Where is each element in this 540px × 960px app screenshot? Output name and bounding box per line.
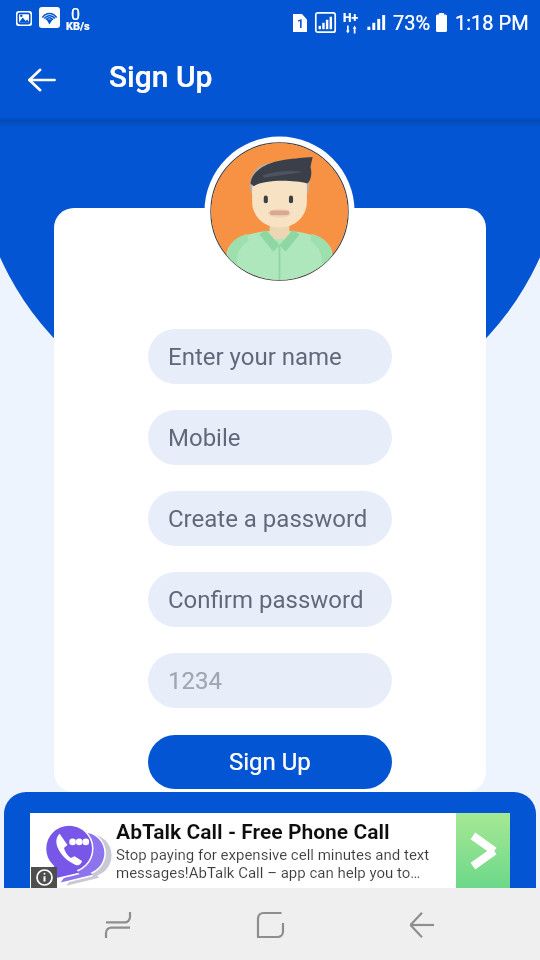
button[interactable]: Open ad (456, 813, 510, 888)
staticText: Confirm password (168, 586, 364, 614)
button[interactable]: Confirm password (148, 572, 392, 627)
staticText: Sign Up (229, 748, 311, 776)
button[interactable]: Home (240, 895, 300, 955)
staticText: 1234 (168, 667, 222, 695)
button[interactable]: Mobile (148, 410, 392, 465)
staticText: Enter your name (168, 343, 342, 371)
staticText: Create a password (168, 505, 368, 533)
staticText: Mobile (168, 424, 241, 452)
button[interactable]: 1234 (148, 653, 392, 708)
button[interactable]: Back (392, 895, 452, 955)
button[interactable]: Back (18, 56, 66, 104)
staticText: Sign Up (109, 59, 213, 94)
staticText: 73% (393, 11, 431, 34)
button[interactable]: Recents (88, 895, 148, 955)
button[interactable]: Create a password (148, 491, 392, 546)
staticText: AbTalk Call - Free Phone Call (116, 820, 390, 845)
staticText: Stop paying for expensive cell minutes a… (116, 846, 452, 882)
staticText: KB/s (66, 20, 90, 33)
button[interactable]: Sign Up (148, 735, 392, 789)
button[interactable]: AbTalk Call - Free Phone Call (30, 813, 510, 888)
staticText: 1:18 PM (455, 11, 529, 34)
staticText: 1 (297, 17, 304, 31)
staticText: 0 (71, 5, 80, 24)
button[interactable]: Enter your name (148, 329, 392, 384)
staticText: H+ (343, 11, 359, 25)
